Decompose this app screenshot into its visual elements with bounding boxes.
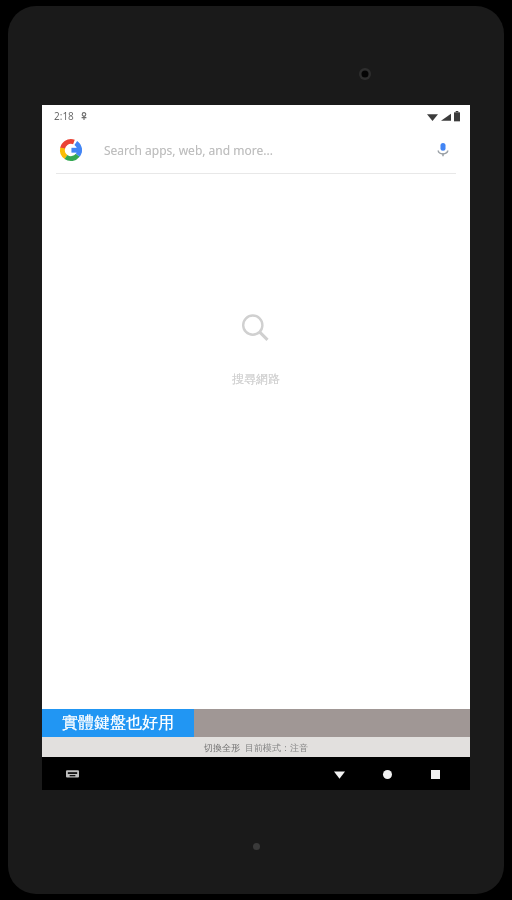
button[interactable]: Back — [326, 761, 352, 787]
button[interactable]: Home — [374, 761, 400, 787]
staticText: Search apps, web, and more... — [104, 142, 273, 158]
staticText: 目前模式：注音 — [245, 742, 308, 753]
button[interactable]: 實體鍵盤也好用 — [42, 709, 194, 737]
button[interactable]: Search apps, web, and more... — [42, 127, 470, 173]
staticText: 切換全形 — [204, 742, 240, 753]
staticText: 2:18 — [54, 109, 74, 123]
staticText: 搜尋網路 — [232, 371, 280, 386]
button[interactable]: Voice search — [430, 137, 456, 163]
button[interactable]: Recent apps — [422, 761, 448, 787]
staticText: 實體鍵盤也好用 — [62, 713, 174, 733]
button[interactable]: Switch keyboard — [58, 760, 86, 788]
